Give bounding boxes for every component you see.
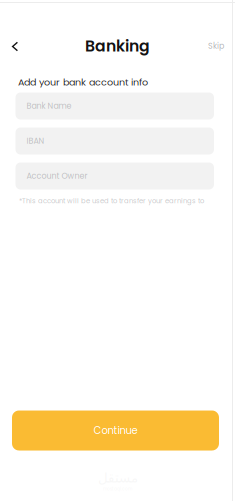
staticText: IBAN <box>26 135 44 147</box>
staticText: Account Owner <box>26 170 87 182</box>
staticText: Add your bank account info <box>18 75 148 89</box>
staticText: Banking <box>85 35 150 57</box>
button[interactable]: Skip <box>200 34 232 58</box>
staticText: Skip <box>208 40 224 52</box>
staticText: Continue <box>93 423 137 437</box>
button[interactable]: Account Owner <box>15 162 214 189</box>
staticText: Bank Name <box>26 100 71 112</box>
button[interactable]: IBAN <box>15 127 214 154</box>
button[interactable]: Continue <box>12 410 219 450</box>
button[interactable]: Bank Name <box>15 92 214 119</box>
staticText: *This account will be used to transfer y… <box>19 196 204 205</box>
button[interactable]: Back <box>2 33 28 59</box>
